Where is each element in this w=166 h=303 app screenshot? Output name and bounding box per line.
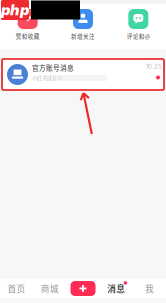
button[interactable]: 发布 Create post [66, 281, 100, 296]
button[interactable]: 我 [133, 282, 166, 295]
staticText: 新增关注 [71, 32, 95, 40]
staticText: 官方账号消息 [32, 63, 74, 72]
staticText: 10:25 [146, 63, 162, 70]
staticText: 小红书成长中 [32, 74, 62, 82]
staticText: 赞和收藏 [16, 32, 40, 40]
staticText: 商城 [41, 282, 59, 295]
staticText: 评论和@ [127, 32, 150, 40]
staticText: 首页 [8, 282, 26, 295]
button[interactable]: 评论和@ [111, 9, 166, 40]
staticText: 消息 [107, 282, 125, 295]
staticText: 我 [145, 282, 154, 295]
button[interactable]: 赞和收藏 [0, 9, 55, 40]
staticText: php [1, 1, 29, 19]
button[interactable]: 消息 [100, 282, 133, 295]
button[interactable]: 新增关注 [55, 9, 111, 40]
button[interactable]: 首页 [0, 282, 33, 295]
button[interactable]: 商城 [33, 282, 66, 295]
button[interactable]: 官方账号消息 [2, 59, 164, 90]
